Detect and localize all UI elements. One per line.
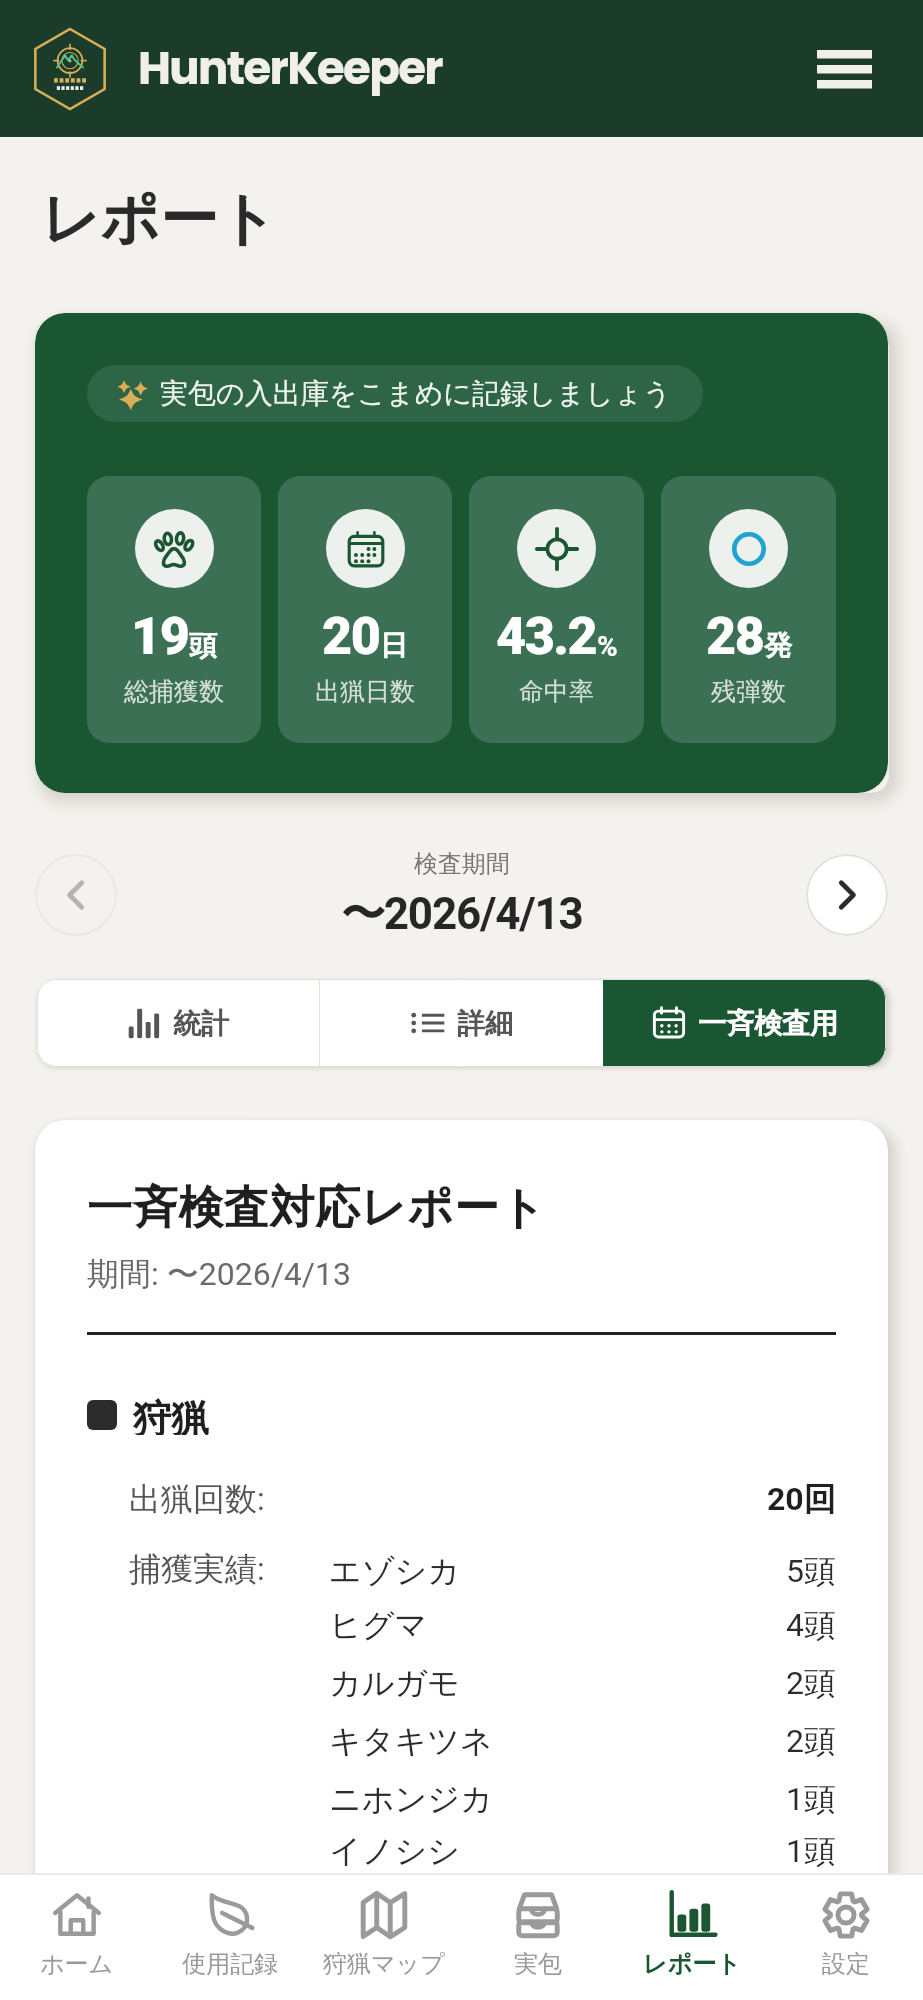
- staticText: 日: [380, 628, 408, 663]
- button[interactable]: ホーム: [0, 1875, 153, 2000]
- staticText: キタキツネ: [329, 1721, 493, 1761]
- staticText: 期間: 〜2026/4/13: [87, 1254, 351, 1294]
- staticText: イノシシ: [329, 1831, 460, 1871]
- staticText: 一斉検査対応レポート: [87, 1180, 547, 1237]
- staticText: レポート: [41, 183, 278, 256]
- staticText: %: [597, 630, 618, 663]
- button[interactable]: 実包: [461, 1875, 615, 2000]
- button[interactable]: 詳細: [320, 979, 603, 1067]
- staticText: 統計: [173, 1006, 229, 1041]
- staticText: 詳細: [457, 1006, 513, 1041]
- staticText: 20: [322, 606, 380, 667]
- button[interactable]: Menu: [802, 27, 886, 111]
- button[interactable]: 28: [661, 476, 836, 743]
- button[interactable]: 次の期間: [806, 854, 888, 936]
- staticText: 捕獲実績:: [129, 1549, 265, 1589]
- staticText: 設定: [822, 1949, 870, 1979]
- staticText: 1頭: [786, 1831, 836, 1871]
- button[interactable]: 43.2: [469, 476, 644, 743]
- staticText: 実包: [514, 1949, 562, 1979]
- button[interactable]: 20: [278, 476, 452, 743]
- staticText: レポート: [643, 1949, 741, 1979]
- staticText: 出猟日数: [315, 676, 415, 707]
- button[interactable]: 19: [87, 476, 261, 743]
- staticText: 1頭: [786, 1779, 836, 1819]
- staticText: 狩猟マップ: [323, 1949, 445, 1979]
- staticText: カルガモ: [329, 1663, 460, 1703]
- staticText: 狩猟: [133, 1395, 209, 1435]
- staticText: 2頭: [786, 1721, 836, 1761]
- button[interactable]: 前の期間: [35, 854, 117, 936]
- staticText: ニホンジカ: [329, 1779, 493, 1819]
- staticText: エゾシカ: [329, 1551, 460, 1591]
- staticText: 5頭: [786, 1551, 836, 1591]
- button[interactable]: レポート: [615, 1875, 769, 2000]
- staticText: 19: [131, 606, 189, 667]
- staticText: 4頭: [786, 1605, 836, 1645]
- button[interactable]: 設定: [769, 1875, 923, 2000]
- button[interactable]: 使用記録: [153, 1875, 307, 2000]
- button[interactable]: 狩猟マップ: [307, 1875, 461, 2000]
- staticText: 発: [764, 628, 792, 663]
- staticText: 実包の入出庫をこまめに記録しましょう: [160, 376, 672, 411]
- staticText: 2頭: [786, 1663, 836, 1703]
- staticText: 20回: [767, 1479, 836, 1519]
- staticText: 命中率: [519, 676, 594, 707]
- staticText: 検査期間: [414, 849, 510, 879]
- staticText: 残弾数: [711, 676, 786, 707]
- staticText: 43.2: [496, 606, 597, 667]
- staticText: ヒグマ: [329, 1605, 428, 1645]
- staticText: 総捕獲数: [124, 676, 224, 707]
- staticText: 28: [706, 606, 764, 667]
- staticText: 一斉検査用: [698, 1006, 838, 1041]
- staticText: ホーム: [40, 1949, 114, 1979]
- button[interactable]: 一斉検査用: [603, 979, 886, 1067]
- staticText: 使用記録: [182, 1949, 278, 1979]
- staticText: HunterKeeper: [138, 37, 442, 100]
- button[interactable]: 統計: [37, 979, 319, 1067]
- staticText: 〜2026/4/13: [341, 887, 583, 941]
- staticText: 出猟回数:: [129, 1479, 265, 1519]
- staticText: 頭: [189, 628, 217, 663]
